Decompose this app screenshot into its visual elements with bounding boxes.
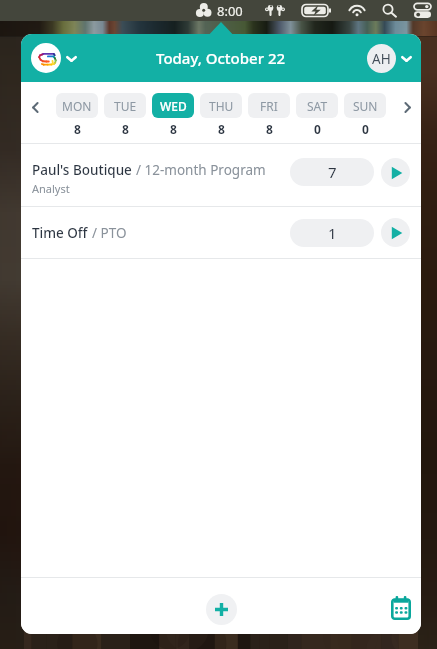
- staticText: MON: [62, 98, 92, 114]
- staticText: / 12-month Program: [136, 161, 266, 179]
- staticText: Today, October 22: [156, 48, 286, 68]
- staticText: SUN: [353, 98, 378, 114]
- staticText: 8: [122, 121, 129, 137]
- staticText: Analyst: [32, 181, 70, 196]
- button[interactable]: TUE: [104, 93, 146, 137]
- button[interactable]: Start timer: [381, 218, 410, 247]
- staticText: TUE: [114, 98, 137, 114]
- staticText: 1: [328, 223, 337, 243]
- staticText: 0: [314, 121, 321, 137]
- button[interactable]: THU: [200, 93, 242, 137]
- button[interactable]: FRI: [248, 93, 290, 137]
- staticText: 8: [170, 121, 177, 137]
- button[interactable]: Next week: [394, 90, 420, 124]
- staticText: / PTO: [92, 224, 127, 242]
- staticText: 7: [328, 162, 337, 182]
- button[interactable]: Switch company: [27, 38, 81, 78]
- button[interactable]: 7: [290, 158, 374, 186]
- staticText: Time Off: [32, 224, 88, 242]
- button[interactable]: Time Off: [21, 207, 421, 258]
- staticText: 0: [362, 121, 369, 137]
- staticText: Paul's Boutique: [32, 161, 132, 179]
- button[interactable]: Calendar: [384, 591, 418, 625]
- button[interactable]: SUN: [344, 93, 386, 137]
- button[interactable]: Start timer: [381, 158, 410, 187]
- staticText: 8:00: [217, 2, 243, 20]
- staticText: WED: [160, 98, 187, 114]
- button[interactable]: 1: [290, 219, 374, 247]
- staticText: 8: [74, 121, 81, 137]
- staticText: AH: [372, 50, 391, 68]
- button[interactable]: Paul's Boutique: [21, 144, 421, 206]
- staticText: THU: [209, 98, 234, 114]
- staticText: SAT: [307, 98, 328, 114]
- button[interactable]: SAT: [296, 93, 338, 137]
- staticText: FRI: [260, 98, 278, 114]
- button[interactable]: WED: [152, 93, 194, 137]
- staticText: 8: [218, 121, 225, 137]
- button[interactable]: Previous week: [22, 90, 48, 124]
- button[interactable]: Account: [363, 39, 416, 78]
- button[interactable]: MON: [56, 93, 98, 137]
- staticText: 8: [266, 121, 273, 137]
- button[interactable]: Add entry: [206, 594, 237, 625]
